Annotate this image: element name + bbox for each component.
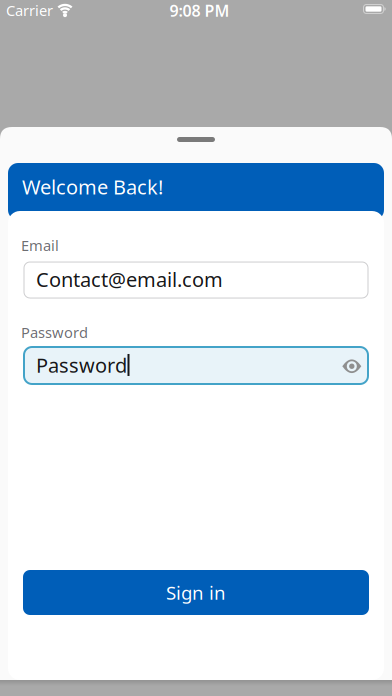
button[interactable]: Password — [24, 347, 368, 384]
button[interactable]: Sign in — [23, 570, 369, 615]
staticText: Carrier — [6, 0, 53, 20]
staticText: Contact@email.com — [36, 266, 223, 293]
staticText: Email — [21, 235, 59, 255]
button[interactable]: Email — [24, 262, 368, 298]
staticText: Password — [21, 322, 88, 342]
staticText: Password — [36, 352, 127, 378]
staticText: 9:08 PM — [169, 0, 229, 21]
staticText: Sign in — [166, 580, 226, 605]
staticText: Welcome Back! — [22, 173, 163, 200]
button[interactable]: Show password — [342, 359, 361, 373]
